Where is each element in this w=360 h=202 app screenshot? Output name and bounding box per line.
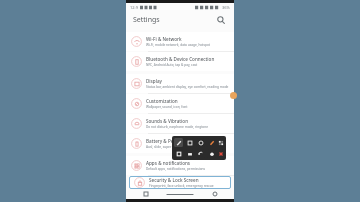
button[interactable]: Mosaic [218, 138, 224, 147]
button[interactable]: Shape [185, 138, 194, 147]
staticText: Fingerprint, face unlock, emergency resc… [149, 184, 214, 188]
staticText: Apps & notifications [146, 160, 191, 166]
button[interactable]: Crop [174, 149, 183, 158]
button[interactable]: Undo [196, 149, 205, 158]
staticText: Wi-Fi, mobile network, data usage, hotsp… [146, 43, 211, 47]
staticText: Battery & Performance [146, 138, 197, 144]
staticText: Customization [146, 98, 178, 104]
staticText: Ausl, slide, super power saving mode [146, 145, 202, 149]
staticText: Security & Lock Screen [149, 177, 199, 183]
button[interactable]: Blur [207, 149, 216, 158]
button[interactable]: Wi-Fi & Network [126, 32, 234, 51]
button[interactable]: Search [215, 14, 227, 26]
button[interactable]: Pen [174, 138, 183, 147]
button[interactable]: Highlighter [207, 138, 216, 147]
button[interactable]: Battery & Performance [126, 134, 234, 153]
button[interactable]: Back [210, 189, 220, 199]
button[interactable]: Display [126, 74, 234, 93]
button[interactable]: Apps & notifications [126, 156, 234, 175]
staticText: 36% [222, 5, 230, 10]
staticText: Status bar, ambient display, eye comfort… [146, 85, 229, 89]
staticText: Wi-Fi & Network [146, 36, 182, 42]
staticText: Bluetooth & Device Connection [146, 56, 215, 62]
staticText: Do not disturb, earphone mode, ringtone [146, 125, 208, 129]
staticText: 12:9 [130, 5, 138, 10]
staticText: Default apps, notifications, permissions [146, 167, 206, 171]
button[interactable]: Recents [141, 189, 151, 199]
staticText: Display [146, 78, 162, 84]
button[interactable]: Bluetooth & Device Connection [126, 52, 234, 71]
button[interactable]: Close [218, 149, 224, 158]
staticText: Settings [133, 15, 160, 25]
button[interactable]: Eraser [185, 149, 194, 158]
staticText: Wallpaper, sound, icon, font [146, 105, 188, 109]
staticText: Sounds & Vibration [146, 118, 189, 124]
button[interactable]: Circle [196, 138, 205, 147]
button[interactable]: Security & Lock Screen [129, 176, 231, 189]
button[interactable]: Customization [126, 94, 234, 113]
button[interactable]: Sounds & Vibration [126, 114, 234, 133]
staticText: NFC, Android Auto, tap & pay, cast [146, 63, 198, 67]
button[interactable]: Home [165, 189, 195, 199]
